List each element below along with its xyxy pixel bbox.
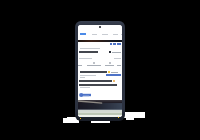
button[interactable]: Call (109, 51, 121, 53)
button[interactable] (105, 62, 114, 66)
button[interactable] (87, 62, 101, 66)
button[interactable] (78, 62, 82, 66)
button[interactable] (78, 32, 122, 36)
